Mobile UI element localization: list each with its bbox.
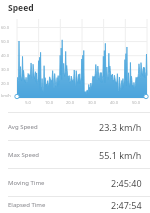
staticText: Max Speed	[8, 151, 39, 159]
staticText: 30.0	[1, 67, 9, 72]
staticText: 50.0	[132, 100, 140, 105]
staticText: 2:45:40	[111, 177, 142, 189]
staticText: 2:47:54	[111, 199, 142, 211]
staticText: 40.0	[110, 100, 118, 105]
staticText: Avg Speed	[8, 123, 38, 131]
staticText: Speed	[8, 2, 34, 14]
staticText: 23.3 km/h	[99, 121, 142, 133]
staticText: Moving Time	[8, 179, 45, 187]
staticText: 20.0	[1, 81, 9, 86]
button[interactable]: Elapsed Time	[0, 196, 150, 213]
staticText: 40.0	[1, 53, 9, 58]
staticText: km/h	[1, 93, 11, 98]
staticText: 20.0	[66, 100, 74, 105]
button[interactable]: Max Speed	[0, 140, 150, 168]
staticText: 50.0	[1, 39, 9, 44]
staticText: 10.0	[45, 100, 53, 105]
staticText: Elapsed Time	[8, 201, 46, 209]
button[interactable]: Avg Speed	[0, 112, 150, 140]
button[interactable]: Moving Time	[0, 168, 150, 196]
staticText: 60.0	[1, 25, 9, 30]
staticText: 30.0	[88, 100, 96, 105]
staticText: 55.1 km/h	[99, 149, 142, 161]
staticText: 5.0	[25, 100, 31, 105]
